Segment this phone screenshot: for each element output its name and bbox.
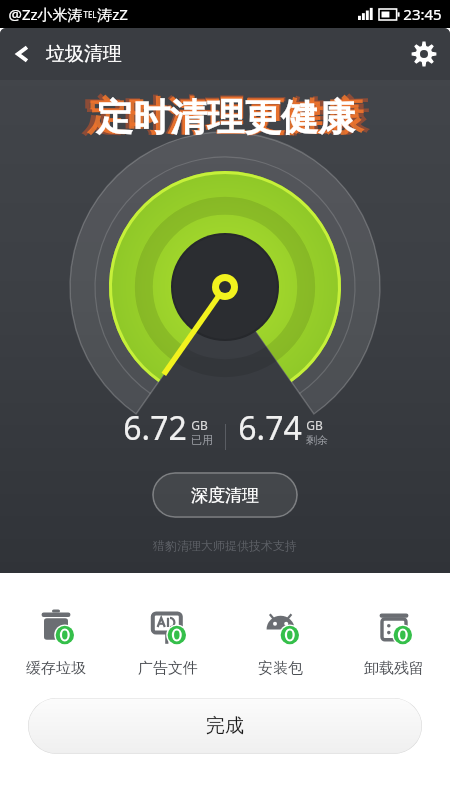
staticText: 23:45 — [403, 4, 442, 24]
staticText: @Zz小米涛 — [8, 4, 83, 24]
staticText: 6.72 — [123, 406, 187, 450]
staticText: GB — [191, 417, 208, 433]
button[interactable]: 深度清理 — [152, 472, 298, 518]
staticText: TEL — [83, 9, 97, 20]
staticText: 广告文件 — [138, 659, 198, 678]
button[interactable]: 广告文件 — [112, 601, 224, 682]
button[interactable]: 卸载残留 — [337, 601, 450, 682]
staticText: 定时清理更健康 — [96, 94, 355, 141]
staticText: 垃圾清理 — [46, 42, 122, 66]
button[interactable]: 垃圾清理 — [0, 28, 136, 80]
staticText: 安装包 — [258, 659, 303, 678]
staticText: 已用 — [191, 433, 213, 447]
staticText: GB — [306, 417, 323, 433]
staticText: 剩余 — [306, 433, 328, 447]
staticText: 涛zZ — [97, 4, 128, 24]
staticText: 定时清理更健康 — [82, 91, 369, 143]
button[interactable]: 缓存垃圾 — [0, 601, 112, 682]
button[interactable]: Settings — [398, 28, 450, 80]
staticText: 完成 — [206, 714, 244, 738]
staticText: 深度清理 — [191, 485, 259, 506]
staticText: 6.74 — [238, 406, 302, 450]
staticText: 卸载残留 — [364, 659, 424, 678]
staticText: 猎豹清理大师提供技术支持 — [153, 538, 297, 553]
button[interactable]: 安装包 — [224, 601, 337, 682]
staticText: 定时清理更健康 — [87, 92, 364, 142]
button[interactable]: 完成 — [28, 698, 422, 754]
staticText: 缓存垃圾 — [26, 659, 86, 678]
